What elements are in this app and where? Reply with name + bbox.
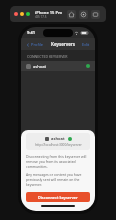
button[interactable]: Settings	[79, 10, 88, 19]
staticText: Disconnecting from this keyserver will r…	[26, 154, 90, 169]
staticText: Keyservers	[51, 41, 75, 47]
button[interactable]: Edit	[81, 41, 91, 48]
button[interactable]: ashoat	[21, 61, 95, 71]
staticText: ashoat	[33, 64, 47, 69]
button[interactable]: Disconnect keyserver	[26, 192, 90, 202]
staticText: Any messages or content you have previou…	[26, 172, 90, 187]
button[interactable]: Close	[14, 12, 18, 16]
staticText: ashoat	[51, 136, 65, 141]
staticText: Edit	[82, 42, 90, 47]
staticText: Disconnect keyserver	[38, 195, 78, 200]
staticText: 9:41	[27, 30, 35, 35]
button[interactable]: Minimise	[20, 12, 24, 16]
staticText: CONNECTED KEYSERVER	[27, 54, 68, 59]
button[interactable]: Zoom	[26, 12, 30, 16]
button[interactable]: Home	[67, 10, 76, 19]
button[interactable]: Screenshot	[91, 10, 100, 19]
button[interactable]: Profile	[25, 41, 45, 48]
staticText: Profile	[31, 42, 44, 47]
staticText: iOS 17.5	[35, 15, 47, 19]
staticText: iPhone 15 Pro	[35, 10, 63, 15]
staticText: http://localhost:3000/keyserver	[35, 143, 82, 147]
